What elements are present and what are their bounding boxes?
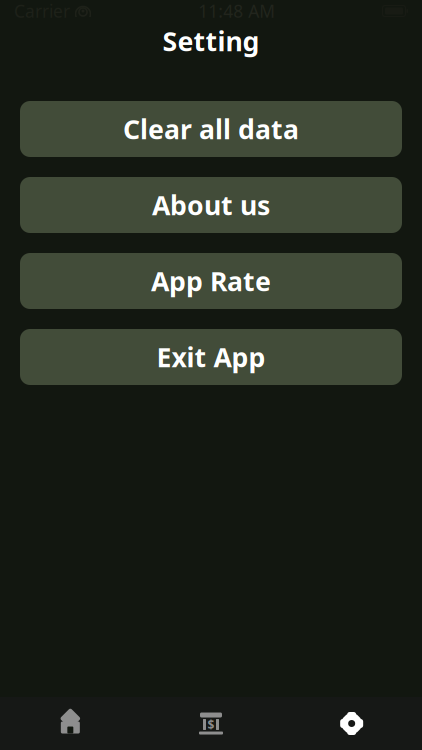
staticText: Setting [162, 23, 259, 59]
button[interactable]: Exit App [20, 329, 402, 385]
staticText: About us [152, 187, 270, 223]
staticText: Exit App [156, 339, 265, 375]
staticText: App Rate [151, 263, 271, 299]
staticText: 11:48 AM [198, 0, 275, 22]
button[interactable]: Home [0, 697, 141, 749]
button[interactable]: Settings [281, 697, 422, 749]
button[interactable]: Bank [141, 697, 281, 749]
button[interactable]: Clear all data [20, 101, 402, 157]
staticText: Carrier [14, 0, 70, 22]
button[interactable]: About us [20, 177, 402, 233]
button[interactable]: App Rate [20, 253, 402, 309]
staticText: $ [207, 716, 214, 732]
staticText: Clear all data [123, 111, 299, 147]
